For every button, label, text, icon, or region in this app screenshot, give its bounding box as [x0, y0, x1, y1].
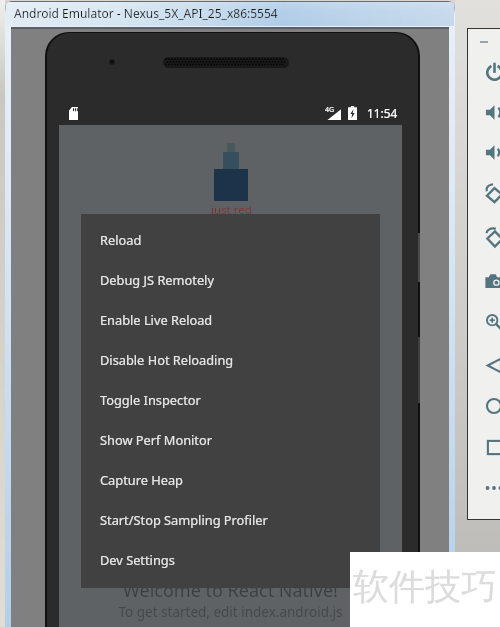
button[interactable]: Back	[482, 353, 500, 377]
staticText: just red	[211, 202, 252, 218]
button[interactable]: Rotate left	[482, 182, 500, 206]
staticText: 11:54	[367, 105, 398, 121]
button[interactable]: More	[482, 476, 500, 500]
staticText: Toggle Inspector	[100, 391, 201, 408]
button[interactable]: Rotate right	[482, 226, 500, 250]
staticText: To get started, edit index.android.js	[59, 603, 402, 621]
staticText: Show Perf Monitor	[100, 431, 212, 448]
button[interactable]: Volume up	[482, 100, 500, 124]
staticText: 4G	[325, 105, 335, 115]
button[interactable]: Zoom	[482, 310, 500, 334]
button[interactable]: Power	[482, 60, 500, 84]
button[interactable]: Disable Hot Reloading	[81, 339, 380, 379]
staticText: 软件技巧	[353, 564, 497, 609]
staticText: Enable Live Reload	[100, 311, 213, 328]
staticText: Disable Hot Reloading	[100, 351, 234, 368]
button[interactable]: Toggle Inspector	[81, 379, 380, 419]
button[interactable]: Show Perf Monitor	[81, 419, 380, 459]
button[interactable]: Overview	[482, 435, 500, 459]
button[interactable]: Home	[482, 394, 500, 418]
button[interactable]: Volume down	[482, 140, 500, 164]
button[interactable]: Capture Heap	[81, 459, 380, 499]
staticText: Reload	[100, 231, 142, 248]
staticText: Debug JS Remotely	[100, 271, 214, 288]
button[interactable]: Reload	[81, 219, 380, 259]
button[interactable]: Enable Live Reload	[81, 299, 380, 339]
staticText: Android Emulator - Nexus_5X_API_25_x86:5…	[14, 5, 278, 21]
button[interactable]: Take screenshot	[482, 269, 500, 293]
button[interactable]: Start/Stop Sampling Profiler	[81, 499, 380, 539]
staticText: Dev Settings	[100, 551, 175, 568]
staticText: Welcome to React Native!	[59, 578, 402, 603]
button[interactable]: Dev Settings	[81, 539, 380, 579]
staticText: Capture Heap	[100, 471, 183, 488]
staticText: Start/Stop Sampling Profiler	[100, 511, 268, 528]
button[interactable]: Debug JS Remotely	[81, 259, 380, 299]
